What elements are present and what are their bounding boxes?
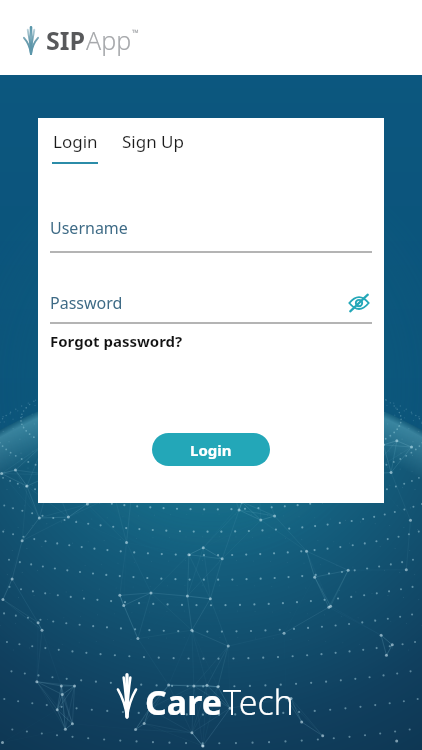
button[interactable]: Show password bbox=[346, 290, 372, 316]
staticText: App bbox=[86, 23, 132, 57]
staticText: Login bbox=[53, 130, 98, 153]
button[interactable]: Password bbox=[50, 290, 372, 316]
button[interactable]: Sign Up bbox=[120, 130, 186, 164]
staticText: Username bbox=[50, 217, 128, 239]
button[interactable]: Login bbox=[50, 130, 100, 164]
staticText: SIP bbox=[46, 23, 86, 57]
staticText: Sign Up bbox=[122, 130, 184, 153]
staticText: ™ bbox=[132, 26, 139, 38]
button[interactable]: Login bbox=[152, 433, 270, 466]
staticText: Forgot password? bbox=[50, 331, 183, 351]
staticText: Tech bbox=[223, 679, 294, 725]
staticText: Password bbox=[50, 292, 123, 314]
staticText: Care bbox=[145, 679, 223, 725]
button[interactable]: Username bbox=[50, 217, 372, 253]
button[interactable]: Forgot password? bbox=[50, 331, 183, 351]
staticText: Login bbox=[190, 440, 232, 460]
